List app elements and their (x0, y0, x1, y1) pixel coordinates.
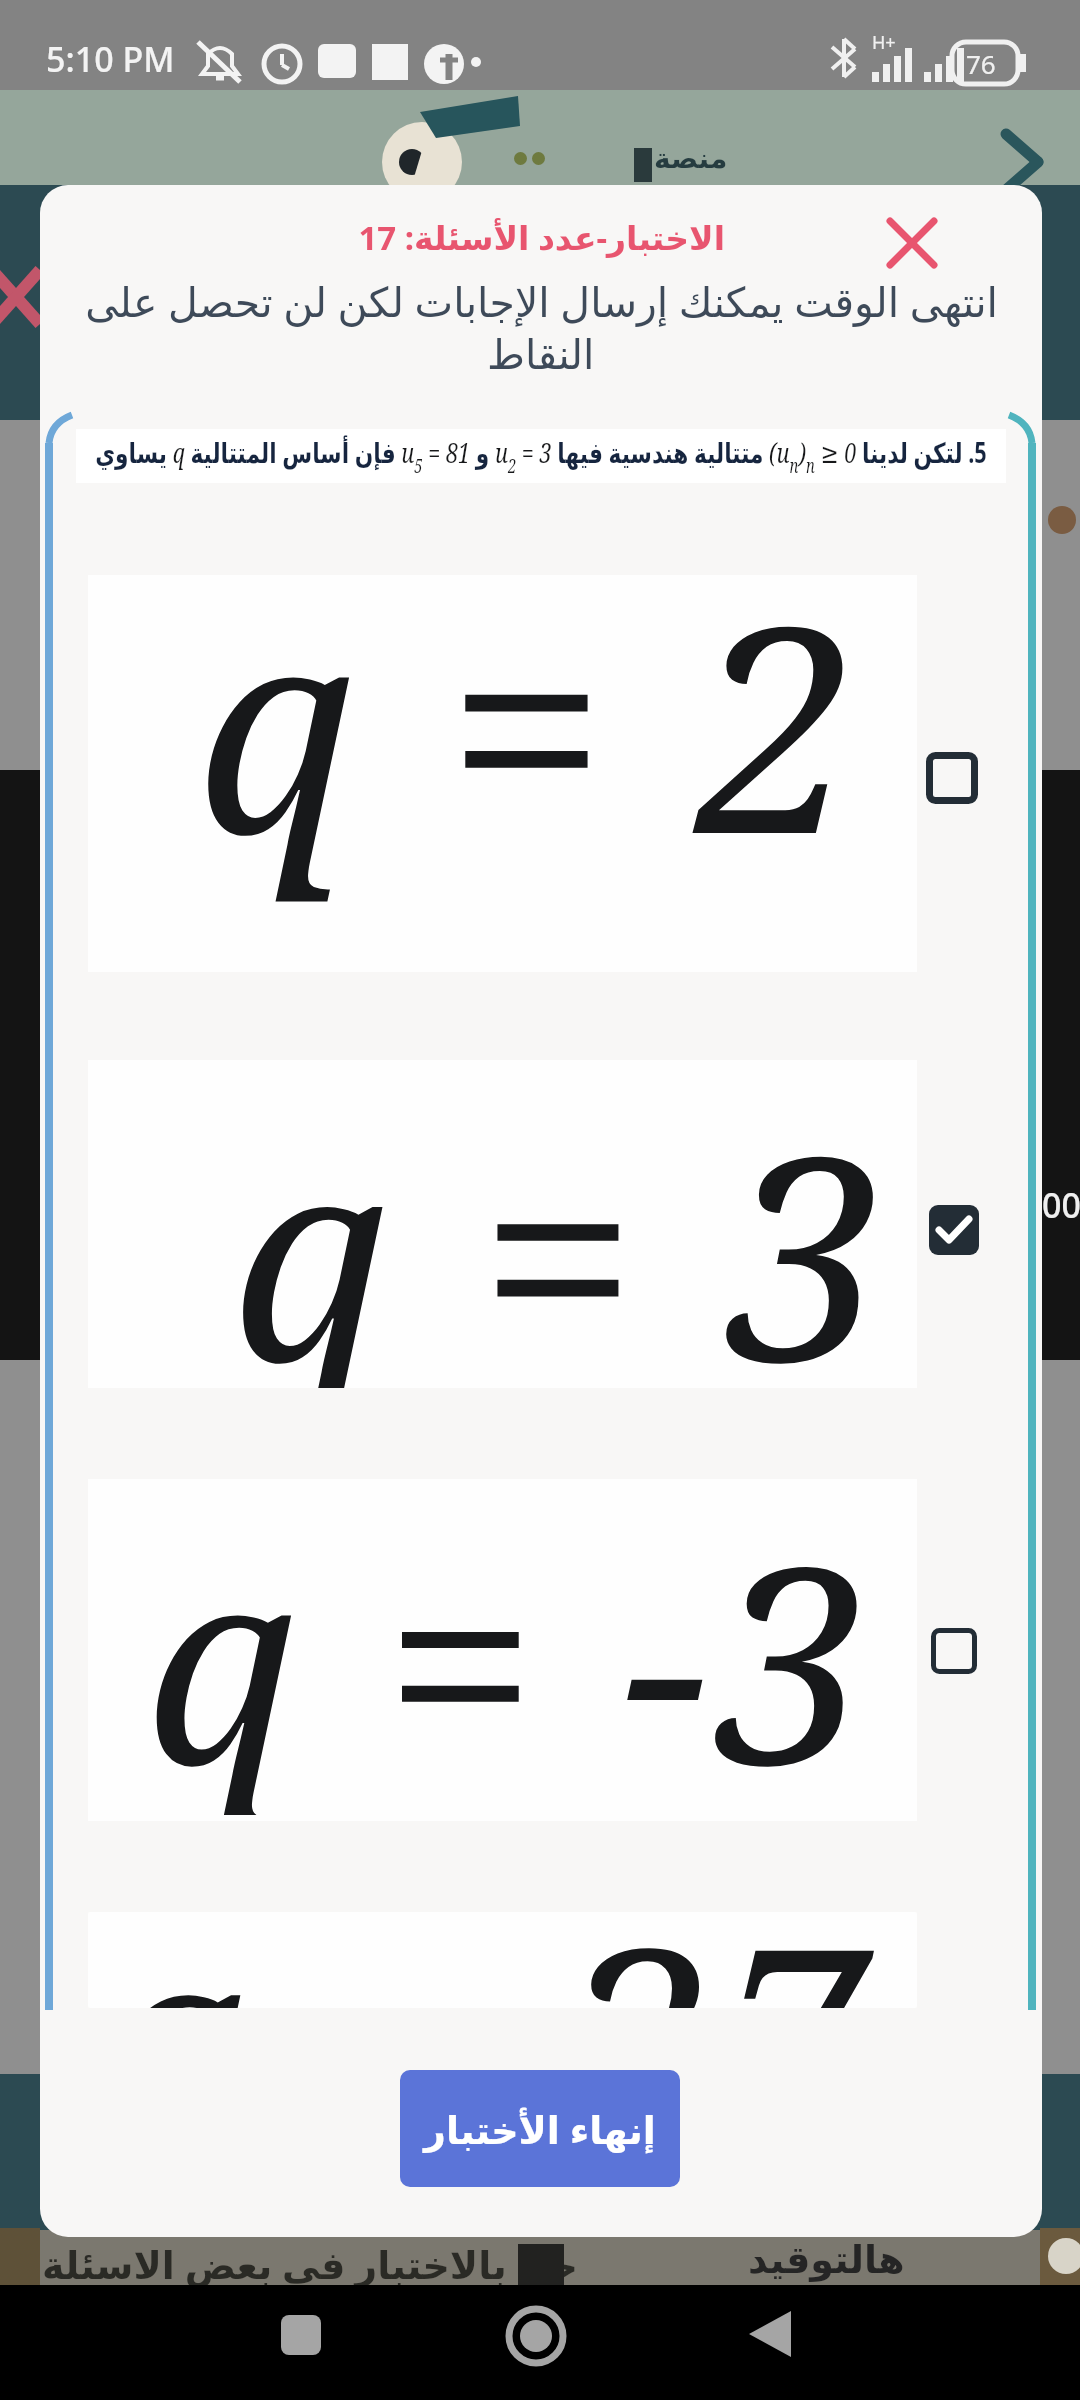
button[interactable]: q = 3 (88, 1060, 917, 1388)
staticText: حل بالاختبار في بعض الاسئلة (42, 2238, 578, 2290)
staticText: q = −3 (145, 1473, 877, 1815)
staticText: q = 27 (98, 1912, 877, 2008)
staticText: H+ (872, 30, 896, 55)
button[interactable] (747, 2311, 793, 2357)
staticText: 5:10 PM (46, 36, 175, 82)
staticText: إنهاء الأختبار (424, 2103, 656, 2155)
button[interactable] (886, 217, 938, 269)
button[interactable] (929, 1205, 979, 1255)
staticText: q = 2 (196, 528, 866, 916)
button[interactable]: q = 2 (88, 575, 917, 972)
button[interactable] (926, 752, 978, 804)
button[interactable]: q = −3 (88, 1479, 917, 1821)
staticText: النقاط (487, 331, 595, 379)
staticText: الاختبار-عدد الأسئلة: 17 (358, 215, 725, 260)
staticText: 5. لتكن لدينا ⁦(un)n ≥ 0⁩ متتالية هندسية… (76, 433, 1006, 479)
staticText: منصة (654, 142, 728, 175)
staticText: انتهى الوقت يمكنك إرسال الإجابات لكن لن … (85, 273, 998, 329)
button[interactable]: إنهاء الأختبار (400, 2070, 680, 2187)
staticText: هالتوقيد (748, 2238, 905, 2282)
button[interactable]: q = 27 (88, 1912, 917, 2008)
button[interactable] (1000, 132, 1044, 196)
staticText: 76 (966, 46, 996, 81)
button[interactable] (281, 2315, 321, 2355)
staticText: q = 3 (231, 1060, 894, 1388)
button[interactable] (931, 1628, 977, 1674)
button[interactable] (505, 2305, 567, 2367)
staticText: 00 (1042, 1182, 1080, 1228)
